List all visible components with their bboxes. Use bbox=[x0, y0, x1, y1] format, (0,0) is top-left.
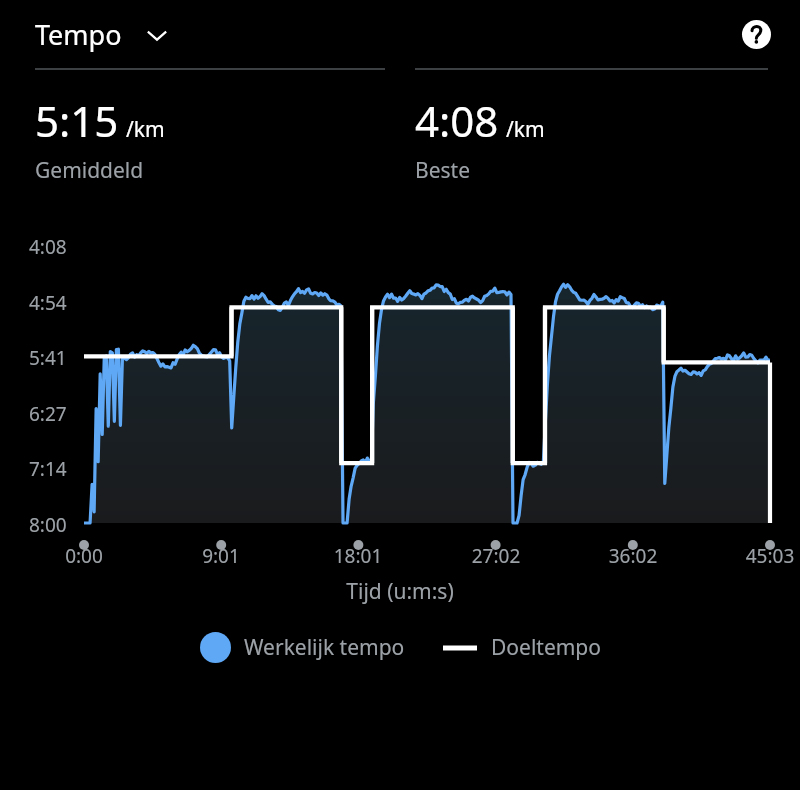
staticText: Werkelijk tempo bbox=[244, 633, 405, 662]
staticText: 4:54 bbox=[29, 290, 67, 316]
button[interactable]: Doeltempo bbox=[443, 633, 601, 662]
staticText: 7:14 bbox=[29, 456, 67, 482]
staticText: 4:08 bbox=[29, 234, 67, 260]
staticText: 5:41 bbox=[29, 345, 67, 371]
staticText: Beste bbox=[415, 156, 470, 185]
staticText: 45:03 bbox=[738, 543, 800, 569]
staticText: Gemiddeld bbox=[35, 156, 144, 185]
staticText: /km bbox=[506, 115, 545, 144]
staticText: 4:08 bbox=[415, 92, 499, 149]
staticText: 36:02 bbox=[601, 543, 665, 569]
staticText: 9:01 bbox=[189, 543, 253, 569]
staticText: Tijd (u:m:s) bbox=[0, 577, 800, 606]
staticText: 8:00 bbox=[29, 512, 67, 538]
button[interactable]: 4:08 bbox=[415, 68, 768, 185]
staticText: Doeltempo bbox=[491, 633, 601, 662]
staticText: /km bbox=[126, 115, 165, 144]
staticText: 27:02 bbox=[464, 543, 528, 569]
button[interactable]: Werkelijk tempo bbox=[200, 632, 405, 663]
staticText: 0:00 bbox=[52, 543, 116, 569]
button[interactable]: Tempo bbox=[35, 16, 170, 53]
button[interactable]: Help bbox=[736, 14, 776, 54]
staticText: 5:15 bbox=[35, 92, 119, 149]
staticText: 6:27 bbox=[29, 401, 67, 427]
staticText: 18:01 bbox=[326, 543, 390, 569]
button[interactable]: 5:15 bbox=[35, 68, 385, 185]
staticText: Tempo bbox=[35, 16, 122, 53]
